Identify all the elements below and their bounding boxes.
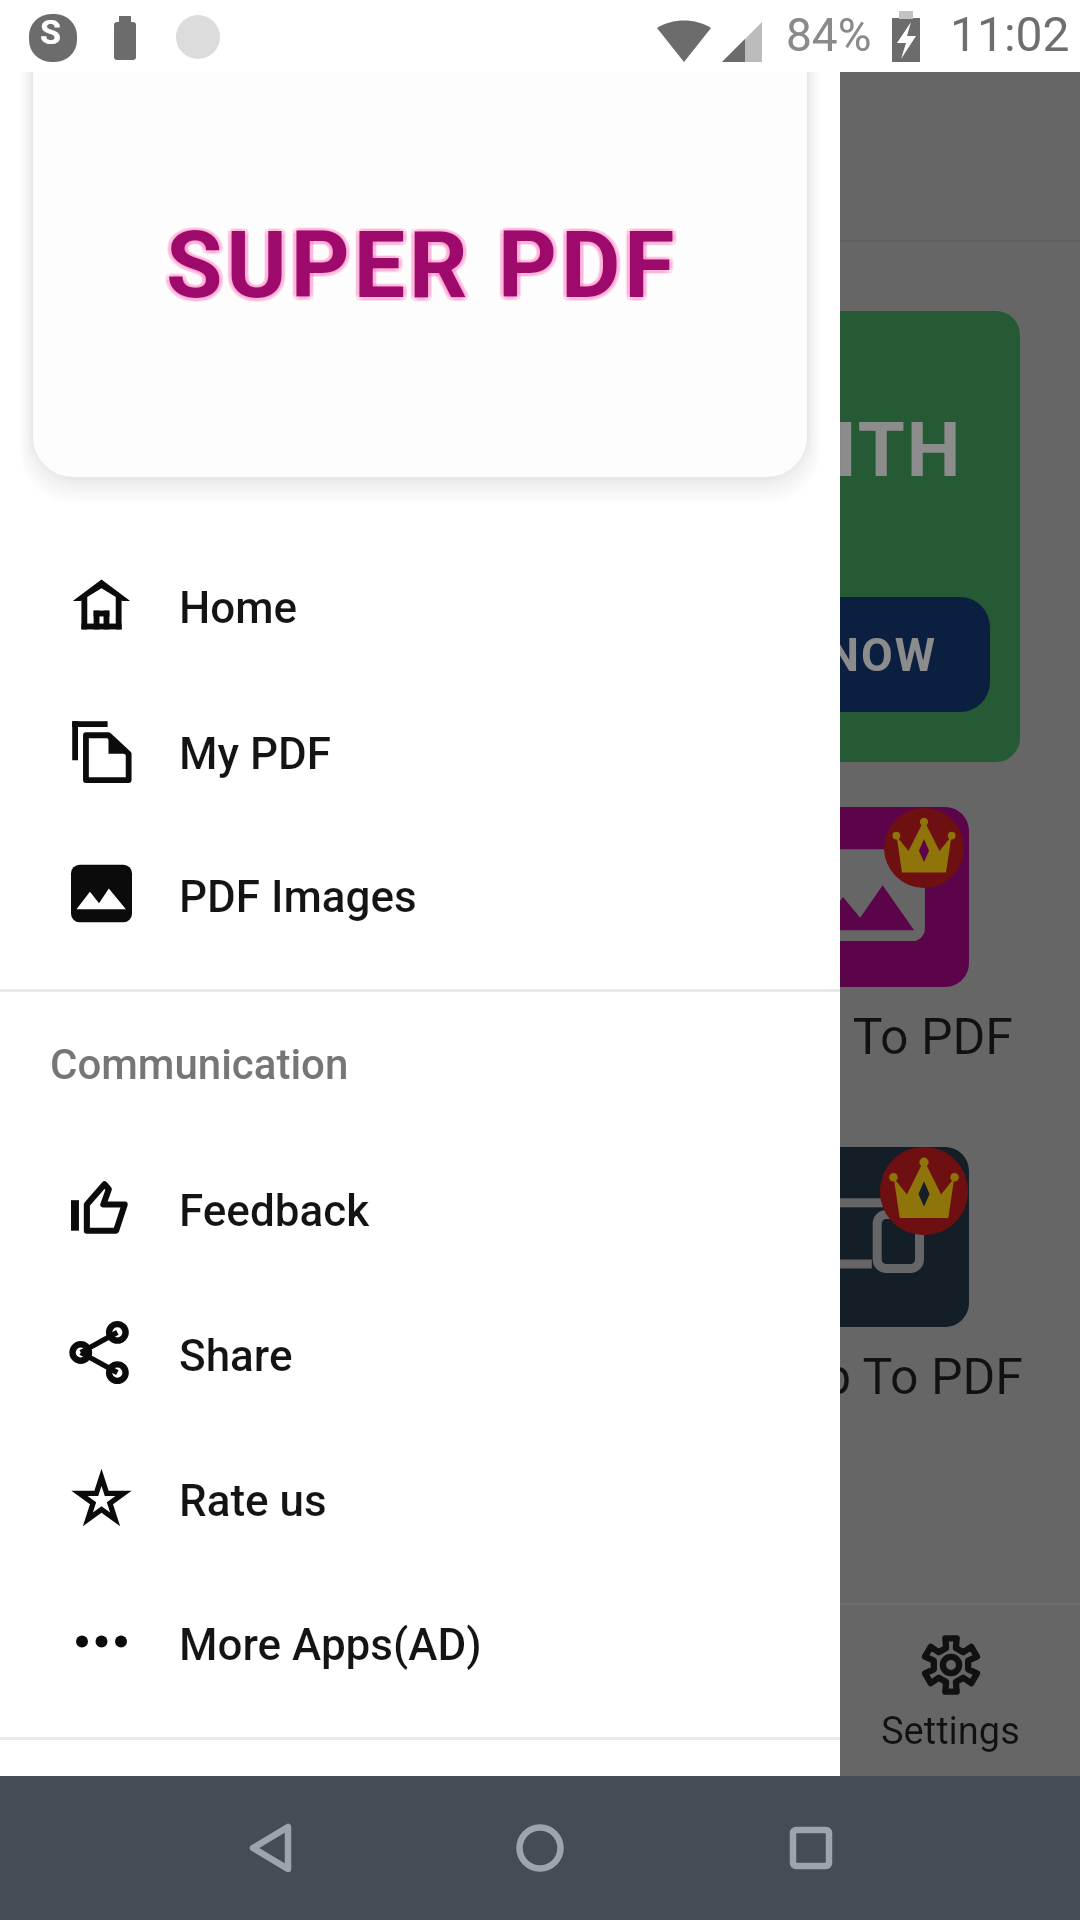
staticText: GO WITH <box>637 405 963 494</box>
staticText: SUPER PDF <box>163 215 676 323</box>
staticText: 11:02 <box>950 6 1070 62</box>
staticText: More Apps(AD) <box>179 1619 482 1671</box>
button[interactable]: BUY NOW <box>570 597 990 712</box>
button[interactable]: Home <box>0 532 840 676</box>
button[interactable]: Web To PDF <box>500 1130 1080 1430</box>
button[interactable]: Back <box>211 1788 331 1908</box>
staticText: Settings <box>881 1709 1020 1754</box>
button[interactable]: Home <box>480 1788 600 1908</box>
staticText: Communication <box>50 1040 349 1089</box>
button[interactable]: Settings <box>820 1605 1080 1776</box>
staticText: S <box>40 12 61 52</box>
staticText: Feedback <box>179 1185 370 1237</box>
button[interactable]: PDF Images <box>0 821 840 965</box>
staticText: SUPER PDF <box>162 212 675 320</box>
button[interactable]: More Apps(AD) <box>0 1569 840 1713</box>
staticText: SUPER PDF <box>170 212 683 320</box>
staticText: BUY NOW <box>719 628 938 682</box>
staticText: SUPER PDF <box>163 210 676 318</box>
button[interactable]: Recent apps <box>751 1788 871 1908</box>
button[interactable]: My PDF <box>0 678 840 822</box>
button[interactable]: Rate us <box>0 1425 840 1569</box>
staticText: SUPER PDF <box>166 216 679 324</box>
staticText: SUPER PDF <box>166 212 679 320</box>
staticText: Rate us <box>179 1475 327 1527</box>
staticText: PDF Images <box>179 871 417 923</box>
staticText: SUPER PDF <box>169 210 682 318</box>
button[interactable]: Feedback <box>0 1135 840 1279</box>
staticText: Home <box>179 582 298 634</box>
staticText: My PDF <box>179 728 332 780</box>
staticText: Share <box>179 1330 293 1382</box>
staticText: SUPER PDF <box>166 209 679 317</box>
staticText: SUPER PDF <box>169 215 682 323</box>
staticText: Image To PDF <box>702 1008 1013 1067</box>
button[interactable]: GO WITH <box>440 311 1020 762</box>
button[interactable]: Share <box>0 1280 840 1424</box>
staticText: Web To PDF <box>753 1348 1023 1407</box>
staticText: 84% <box>786 8 872 62</box>
button[interactable]: Image To PDF <box>500 790 1080 1090</box>
